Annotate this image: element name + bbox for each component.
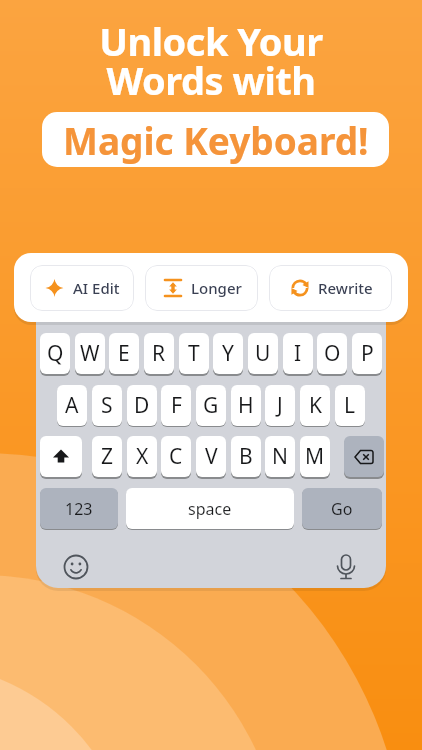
staticText: Unlock Your [99, 15, 323, 67]
button[interactable]: F [161, 385, 191, 426]
button[interactable]: L [335, 385, 365, 426]
button[interactable]: W [75, 333, 105, 374]
button[interactable]: H [231, 385, 261, 426]
button[interactable]: Q [40, 333, 70, 374]
button[interactable]: S [92, 385, 122, 426]
staticText: X [136, 442, 149, 471]
button[interactable]: T [179, 333, 209, 374]
button[interactable]: K [300, 385, 330, 426]
button[interactable]: G [196, 385, 226, 426]
staticText: D [134, 391, 150, 420]
button[interactable]: R [144, 333, 174, 374]
staticText: Q [47, 339, 64, 368]
staticText: M [305, 442, 325, 471]
staticText: Magic Keyboard! [63, 115, 369, 165]
staticText: T [188, 339, 200, 368]
button[interactable]: P [352, 333, 382, 374]
staticText: S [101, 391, 113, 420]
staticText: O [324, 339, 341, 368]
button[interactable]: Longer [145, 265, 258, 311]
staticText: J [277, 391, 283, 420]
button[interactable]: X [127, 436, 157, 477]
staticText: space [188, 498, 232, 520]
staticText: Go [331, 498, 353, 520]
staticText: G [203, 391, 219, 420]
button[interactable] [344, 436, 384, 477]
staticText: AI Edit [73, 278, 120, 298]
button[interactable]: Y [213, 333, 243, 374]
staticText: A [65, 391, 79, 420]
staticText: P [361, 339, 374, 368]
button[interactable]: A [57, 385, 87, 426]
staticText: R [152, 339, 166, 368]
staticText: Rewrite [318, 278, 373, 298]
staticText: L [344, 391, 356, 420]
staticText: V [205, 442, 218, 471]
staticText: Y [222, 339, 234, 368]
staticText: W [80, 339, 100, 368]
staticText: N [272, 442, 288, 471]
button[interactable]: space [126, 488, 294, 529]
staticText: C [169, 442, 183, 471]
staticText: E [118, 339, 130, 368]
button[interactable]: Z [92, 436, 122, 477]
button[interactable]: U [248, 333, 278, 374]
staticText: Z [101, 442, 114, 471]
button[interactable]: D [127, 385, 157, 426]
button[interactable]: M [300, 436, 330, 477]
staticText: B [239, 442, 253, 471]
staticText: 123 [65, 498, 93, 520]
staticText: Words with [106, 54, 316, 106]
button[interactable]: E [109, 333, 139, 374]
staticText: F [171, 391, 182, 420]
button[interactable]: I [283, 333, 313, 374]
button[interactable]: O [317, 333, 347, 374]
button[interactable]: J [265, 385, 295, 426]
staticText: U [255, 339, 271, 368]
button[interactable] [40, 436, 82, 477]
button[interactable]: 123 [40, 488, 118, 529]
staticText: K [309, 391, 322, 420]
button[interactable]: AI Edit [30, 265, 134, 311]
button[interactable]: B [231, 436, 261, 477]
button[interactable]: Rewrite [269, 265, 392, 311]
button[interactable]: N [265, 436, 295, 477]
staticText: I [294, 339, 302, 368]
staticText: H [238, 391, 254, 420]
button[interactable]: V [196, 436, 226, 477]
button[interactable]: Go [302, 488, 382, 529]
button[interactable]: C [161, 436, 191, 477]
staticText: Longer [191, 278, 242, 298]
